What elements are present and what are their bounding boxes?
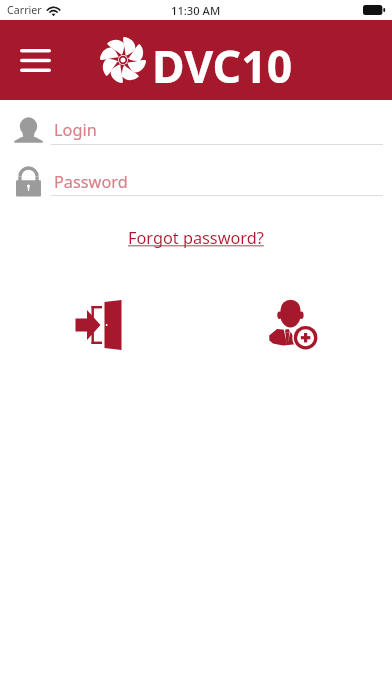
button[interactable]: Sign in [54,281,142,369]
staticText: 11:30 AM [171,3,221,18]
button[interactable]: Forgot password? [128,227,264,249]
button[interactable]: Register new user [250,281,338,369]
button[interactable]: Menu [12,37,58,83]
staticText: Carrier [7,3,42,18]
button[interactable]: Password [0,164,392,200]
button[interactable]: Login [0,111,392,147]
staticText: DVC10 [152,35,293,96]
staticText: Login [54,119,97,141]
staticText: Password [54,171,128,193]
